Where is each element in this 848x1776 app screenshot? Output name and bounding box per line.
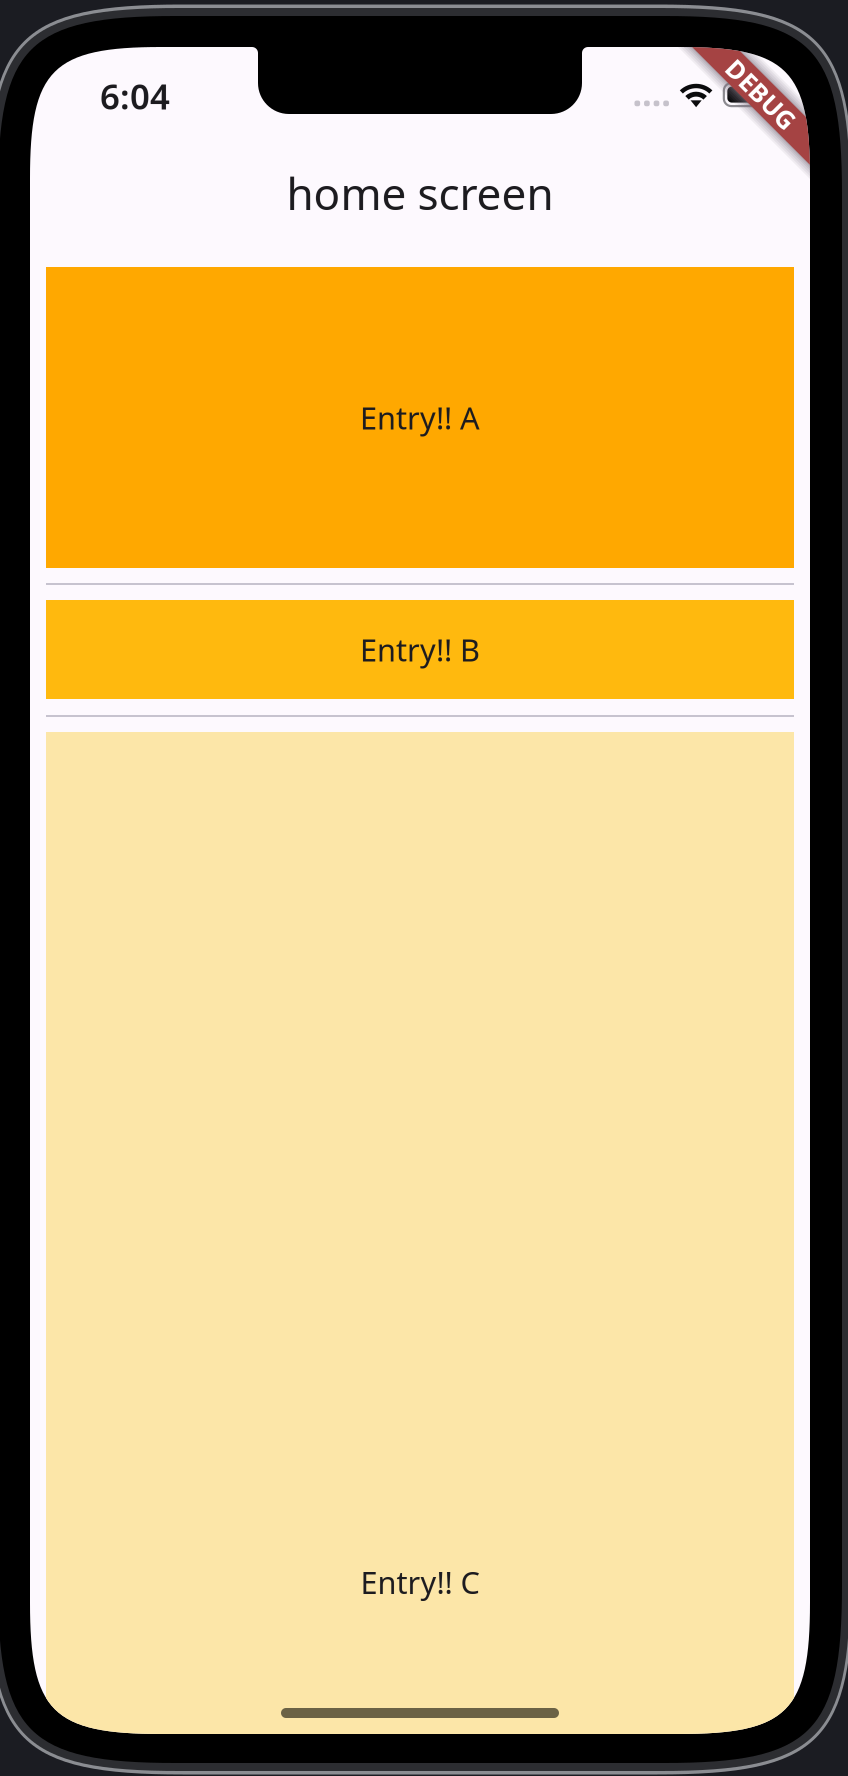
staticText: Entry!! C xyxy=(360,1562,479,1602)
button[interactable]: Entry!! A xyxy=(46,267,794,568)
staticText: Entry!! B xyxy=(360,629,480,670)
staticText: DEBUG xyxy=(717,77,804,111)
staticText: home screen xyxy=(286,164,553,222)
staticText: Entry!! A xyxy=(360,397,480,438)
staticText: 6:04 xyxy=(100,73,170,119)
button[interactable]: Entry!! B xyxy=(46,600,794,699)
button[interactable]: Entry!! C xyxy=(46,732,794,1776)
